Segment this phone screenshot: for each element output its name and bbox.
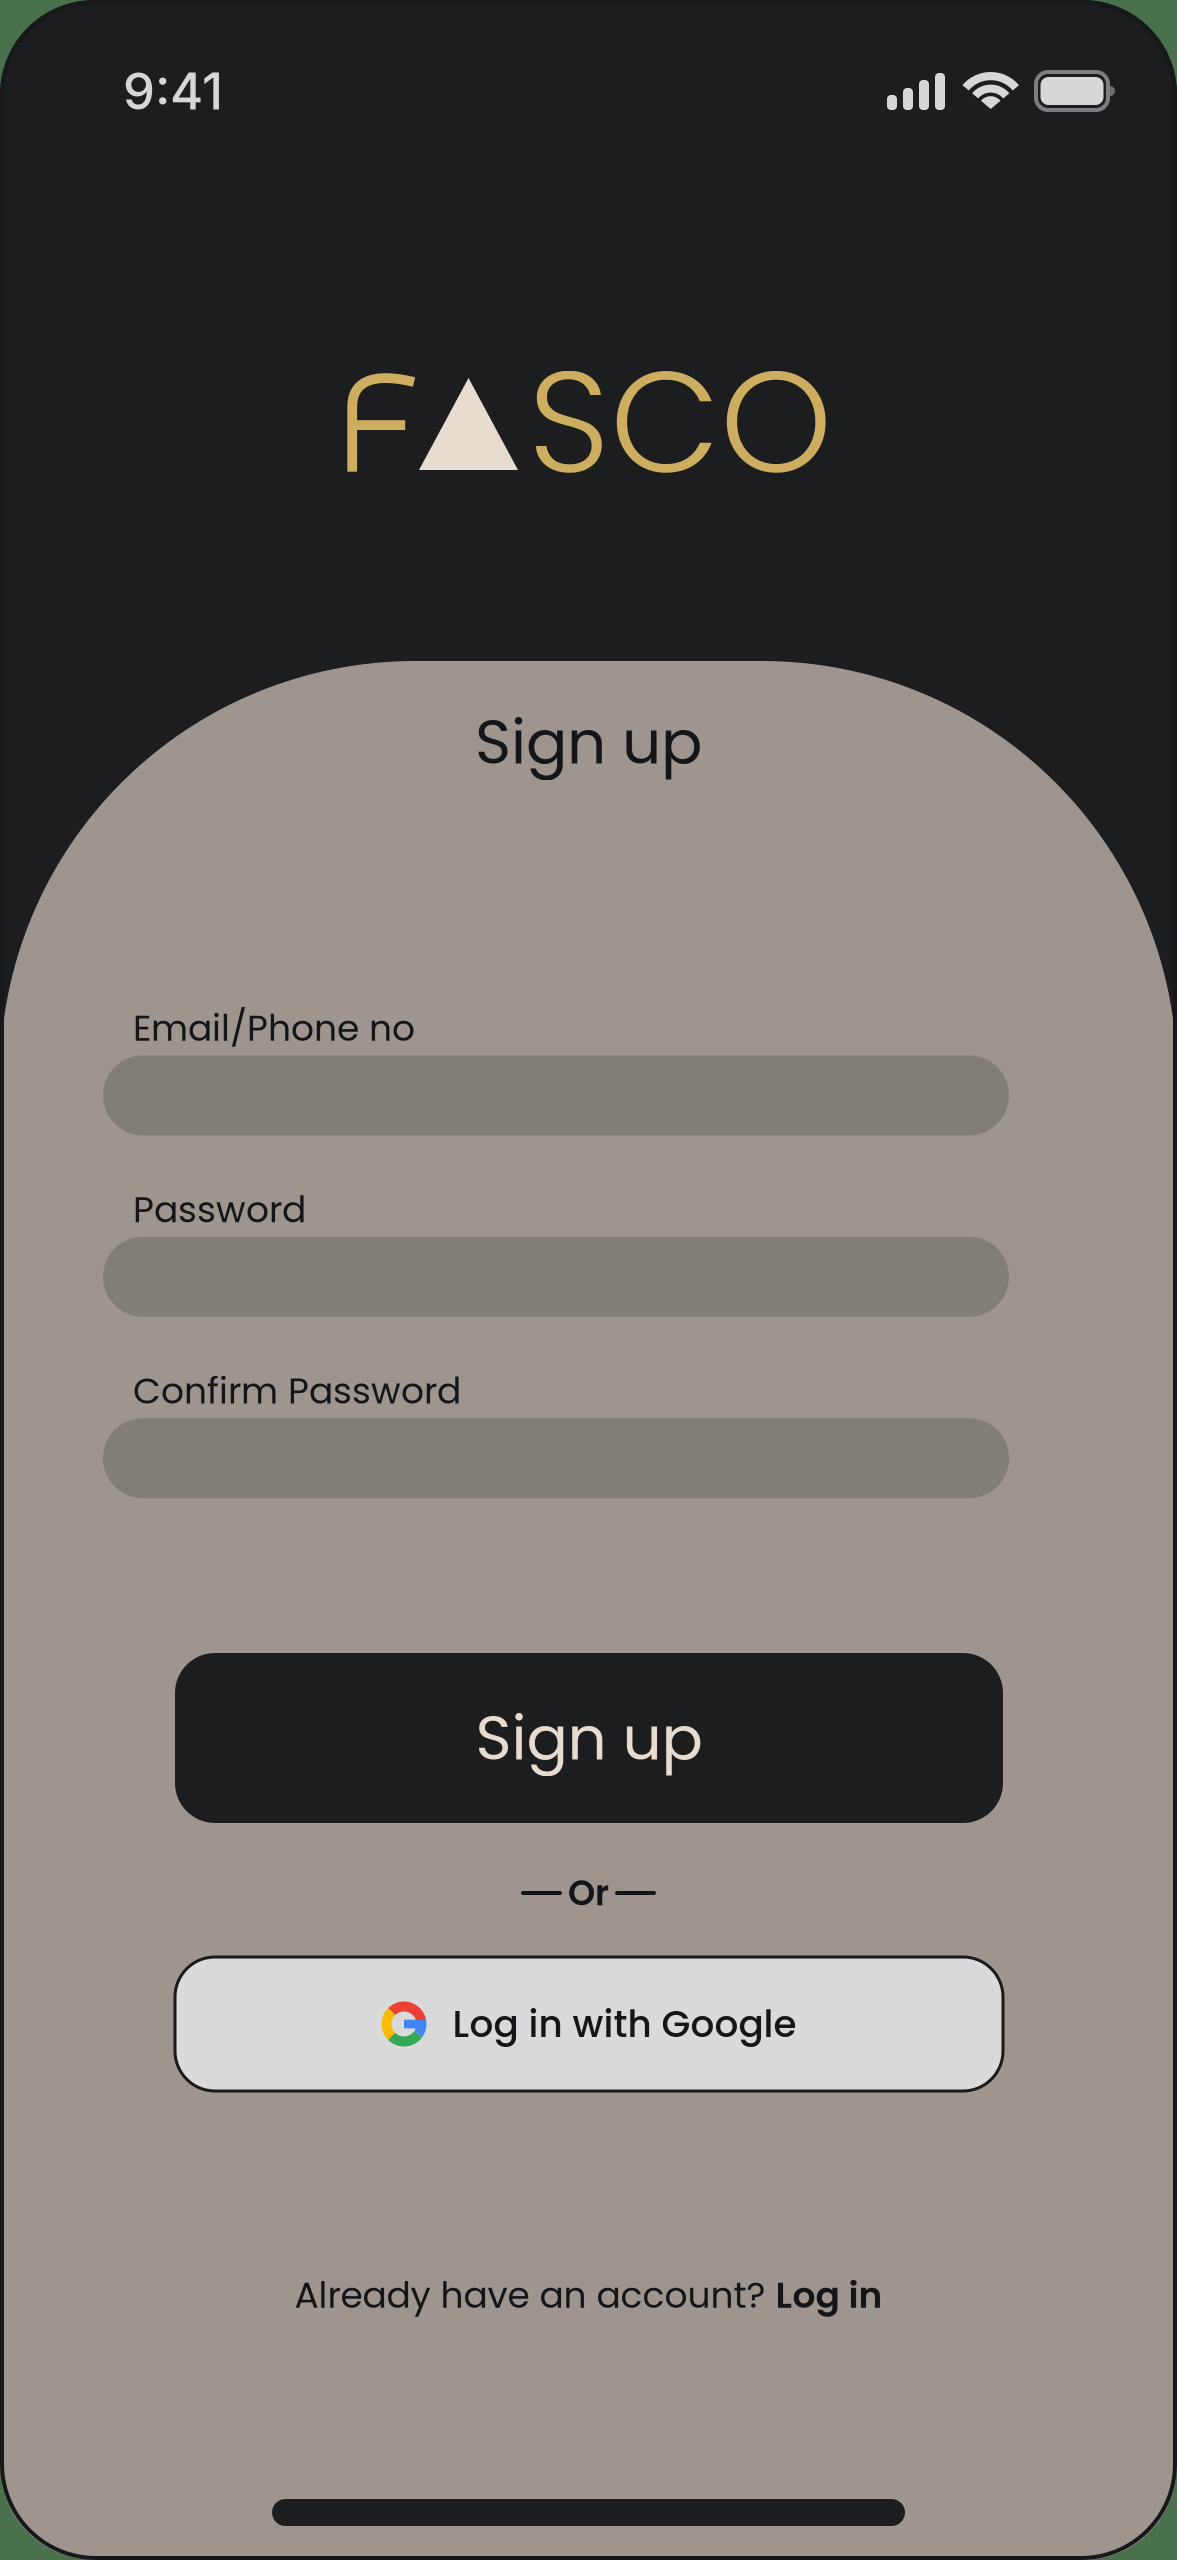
staticText: 9:41 xyxy=(123,60,223,122)
button[interactable]: Already have an account? xyxy=(0,2270,1177,2320)
staticText: Password xyxy=(133,1184,306,1235)
staticText: Or xyxy=(568,1869,609,1917)
button[interactable]: Sign up xyxy=(175,1653,1003,1823)
staticText: Already have an account? xyxy=(294,2270,775,2320)
staticText: Log in xyxy=(775,2270,882,2320)
staticText: Sign up xyxy=(475,699,702,785)
staticText: SCO xyxy=(528,322,832,522)
button[interactable]: Email/Phone no xyxy=(103,1055,1009,1135)
staticText: Sign up xyxy=(475,1695,702,1781)
staticText: Confirm Password xyxy=(133,1366,461,1416)
button[interactable]: Password xyxy=(103,1237,1009,1317)
staticText: Log in with Google xyxy=(452,1998,796,2050)
staticText: Email/Phone no xyxy=(133,1003,415,1053)
button[interactable]: Log in with Google xyxy=(175,1957,1003,2091)
button[interactable]: Confirm Password xyxy=(103,1418,1009,1498)
